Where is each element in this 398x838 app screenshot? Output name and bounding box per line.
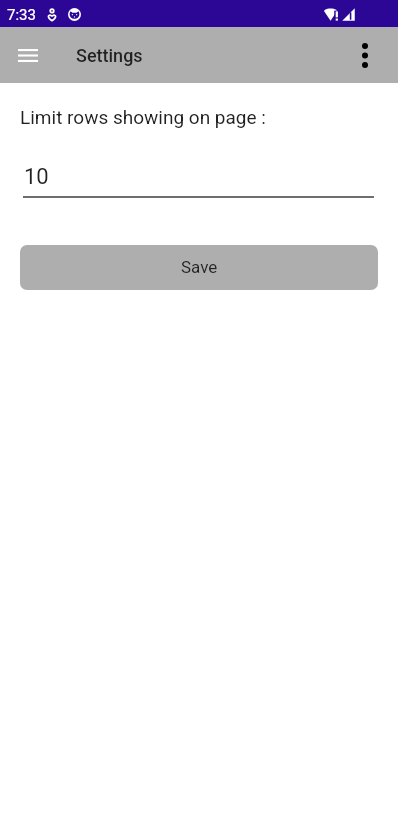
button[interactable]: Limit rows input field [23, 155, 374, 198]
staticText: Limit rows showing on page : [20, 106, 266, 128]
button[interactable]: Open navigation menu [8, 35, 48, 75]
button[interactable]: Save [20, 245, 378, 290]
staticText: 7:33 [7, 6, 36, 24]
staticText: 10 [24, 164, 49, 190]
button[interactable]: More options [348, 38, 382, 72]
staticText: Settings [76, 45, 143, 66]
staticText: Save [181, 257, 218, 277]
